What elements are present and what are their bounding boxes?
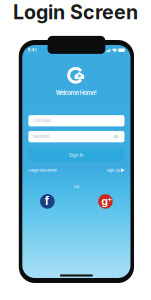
staticText: OR	[74, 184, 79, 189]
staticText: g	[101, 195, 108, 208]
staticText: Username	[33, 118, 51, 123]
staticText: Sign Up	[107, 168, 120, 173]
staticText: f	[45, 194, 50, 208]
staticText: Password	[33, 134, 49, 139]
staticText: Forgot Password?	[28, 168, 57, 172]
staticText: Sign In	[69, 152, 84, 158]
button[interactable]: Sign in with Facebook	[40, 194, 55, 209]
button[interactable]: Sign in with Google Plus	[98, 194, 113, 209]
staticText: Welcome Home!	[56, 89, 97, 96]
staticText: 9:41	[28, 48, 37, 53]
button[interactable]: Sign Up	[107, 167, 124, 174]
button[interactable]: Sign In	[28, 148, 124, 162]
button[interactable]: Forgot Password?	[28, 167, 57, 174]
staticText: Login Screen	[13, 0, 138, 24]
